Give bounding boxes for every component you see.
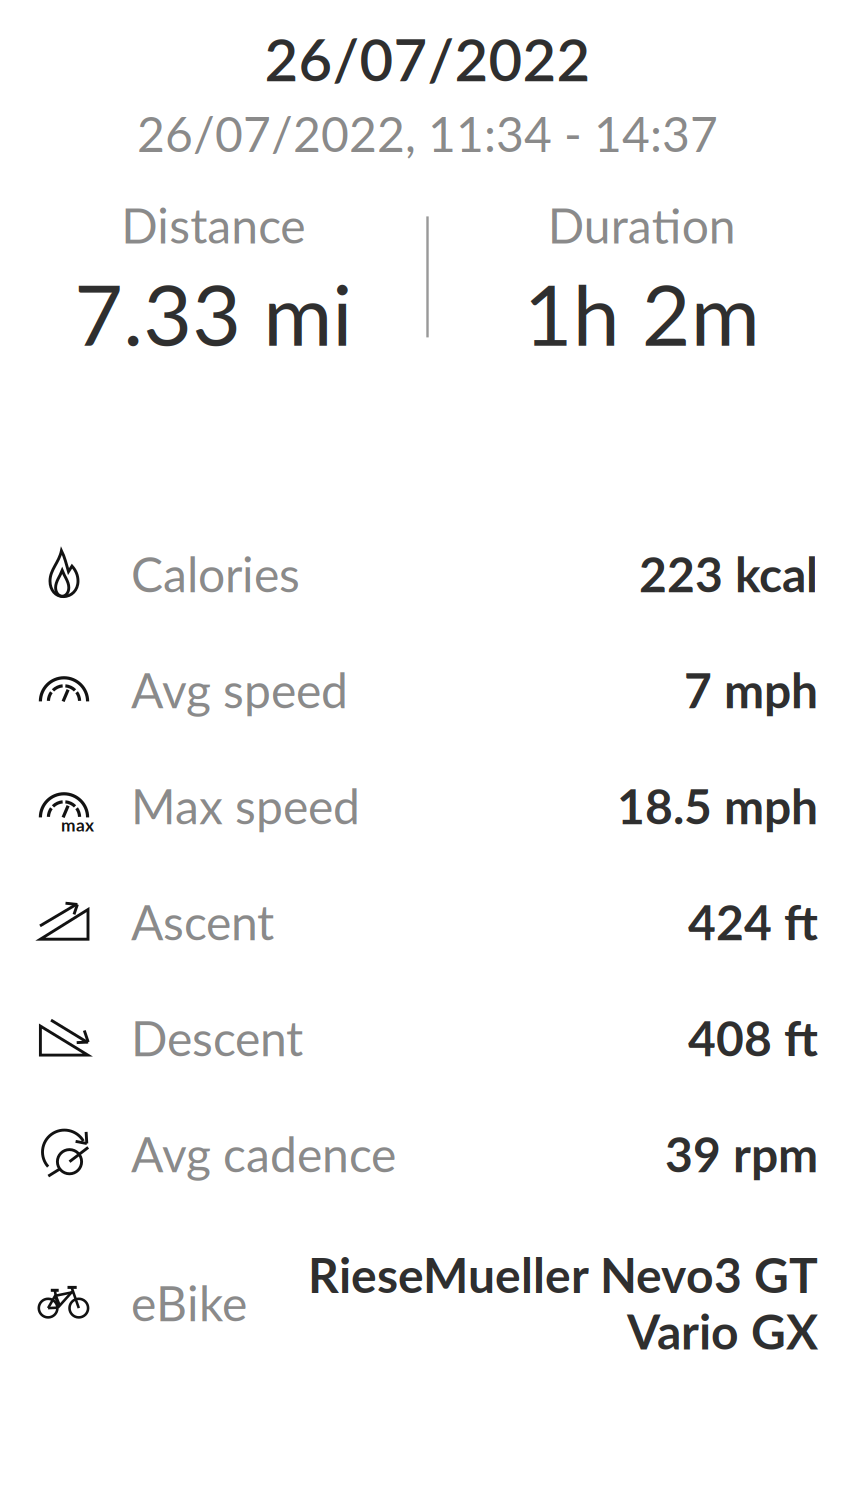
- staticText: 39 rpm: [665, 1125, 818, 1182]
- staticText: Calories: [131, 545, 300, 602]
- staticText: Ascent: [131, 893, 274, 950]
- staticText: 26/07/2022, 11:34 - 14:37: [137, 105, 718, 162]
- staticText: Max speed: [131, 777, 360, 834]
- button[interactable]: Calories: [0, 516, 855, 632]
- staticText: 424 ft: [688, 893, 818, 950]
- button[interactable]: Avg speed: [0, 632, 855, 748]
- staticText: 18.5 mph: [617, 777, 818, 834]
- staticText: eBike: [131, 1274, 247, 1331]
- staticText: RieseMueller Nevo3 GT: [308, 1245, 818, 1303]
- staticText: 1h 2m: [524, 263, 760, 364]
- staticText: Descent: [131, 1009, 303, 1066]
- staticText: Avg cadence: [131, 1125, 396, 1182]
- button[interactable]: Avg cadence: [0, 1096, 855, 1212]
- staticText: 408 ft: [688, 1009, 818, 1066]
- staticText: max: [61, 814, 94, 835]
- staticText: 7 mph: [684, 661, 818, 718]
- button[interactable]: Ascent: [0, 864, 855, 980]
- staticText: 26/07/2022: [264, 24, 590, 94]
- staticText: Duration: [548, 196, 736, 254]
- button[interactable]: max: [0, 748, 855, 864]
- button[interactable]: Descent: [0, 980, 855, 1096]
- staticText: Distance: [121, 196, 305, 254]
- staticText: Vario GX: [627, 1302, 818, 1360]
- staticText: 223 kcal: [639, 545, 818, 602]
- staticText: 7.33 mi: [74, 263, 352, 364]
- button[interactable]: eBike: [0, 1212, 855, 1394]
- staticText: Avg speed: [131, 661, 348, 718]
